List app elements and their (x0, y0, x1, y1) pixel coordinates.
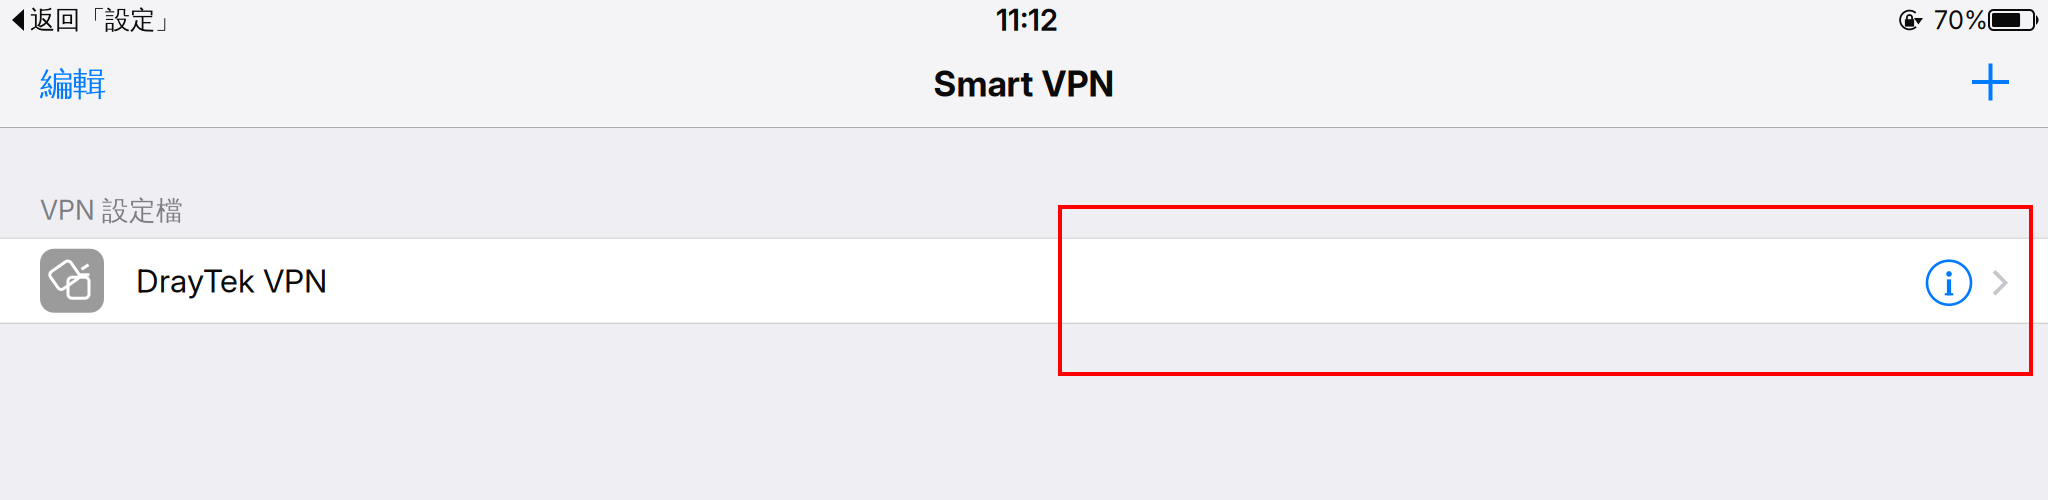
staticText: 11:12 (996, 2, 1058, 38)
button[interactable]: Profile info (1905, 239, 2048, 323)
button[interactable]: 返回「設定」 (0, 0, 180, 40)
button[interactable]: Add VPN profile (1972, 40, 2048, 128)
button[interactable]: DrayTek VPN (0, 239, 2048, 323)
staticText: VPN 設定檔 (40, 194, 183, 228)
staticText: DrayTek VPN (136, 261, 327, 300)
staticText: 編輯 (40, 63, 106, 105)
staticText: 返回「設定」 (30, 4, 180, 36)
button[interactable]: 編輯 (0, 40, 106, 128)
staticText: 70% (1934, 5, 1988, 35)
staticText: Smart VPN (933, 63, 1114, 105)
